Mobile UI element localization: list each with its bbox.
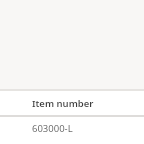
button[interactable]: Item number	[0, 91, 144, 115]
button[interactable]: 603000-L	[0, 117, 144, 144]
staticText: Item number	[32, 97, 94, 110]
staticText: 603000-L	[32, 122, 73, 135]
